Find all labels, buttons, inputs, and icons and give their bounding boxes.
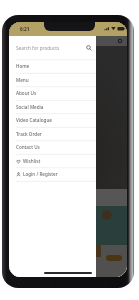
staticText: Video Catalogue <box>16 117 52 123</box>
staticText: Social Media <box>16 104 44 110</box>
button[interactable]: Search for products <box>9 36 96 59</box>
other: Search <box>86 45 92 51</box>
button[interactable]: Contact Us <box>9 140 96 154</box>
button[interactable]: Video Catalogue <box>9 113 96 127</box>
staticText: Home <box>16 63 30 69</box>
staticText: Menu <box>16 77 29 83</box>
button[interactable]: Social Media <box>9 100 96 114</box>
staticText: Login / Register <box>23 171 58 177</box>
staticText: Wishlist <box>23 158 41 164</box>
button[interactable]: Home <box>9 59 96 73</box>
staticText: Search for products <box>16 45 60 51</box>
button[interactable]: Login / Register <box>9 167 96 181</box>
staticText: Track Order <box>16 131 42 137</box>
staticText: Contact Us <box>16 144 40 150</box>
staticText: 6:21 <box>20 26 30 33</box>
button[interactable]: Menu <box>9 73 96 87</box>
staticText: About Us <box>16 90 37 96</box>
button[interactable]: Track Order <box>9 127 96 141</box>
button[interactable]: About Us <box>9 86 96 100</box>
button[interactable]: Wishlist <box>9 154 96 168</box>
